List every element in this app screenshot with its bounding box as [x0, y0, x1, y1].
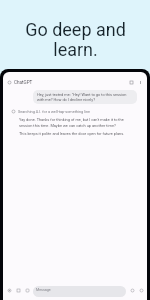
staticText: Hey, just texted me: "Hey! Want to go to…: [37, 92, 133, 102]
staticText: Searching A.I. for a well-tap-something …: [18, 109, 91, 113]
button[interactable]: Tools: [15, 286, 21, 292]
button[interactable]: Voice input: [129, 286, 135, 292]
button[interactable]: Camera: [24, 286, 30, 292]
button[interactable]: Add attachment: [6, 286, 12, 292]
staticText: This keeps it polite and leaves the door…: [19, 131, 125, 136]
button[interactable]: Voice mode: [138, 286, 144, 292]
button[interactable]: More options: [138, 80, 143, 85]
button[interactable]: New chat: [129, 80, 134, 85]
staticText: Go deep and learn.: [25, 19, 126, 61]
staticText: Yay done. Thanks for thinking of me, but…: [19, 117, 134, 128]
staticText: ChatGPT: [14, 80, 33, 85]
button[interactable]: Menu: [7, 80, 12, 85]
staticText: Message: [36, 288, 51, 292]
button[interactable]: Message: [33, 286, 126, 297]
